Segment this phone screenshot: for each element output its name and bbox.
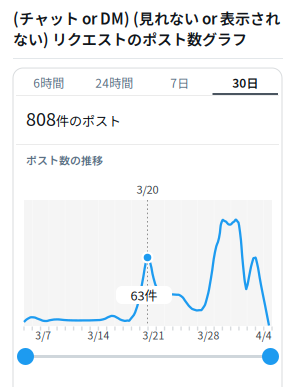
staticText: 6時間 — [33, 74, 64, 91]
staticText: 4/4 — [256, 327, 272, 343]
staticText: 3/21 — [142, 327, 164, 343]
button[interactable]: Range end — [262, 348, 279, 365]
staticText: 63件 — [130, 286, 157, 304]
staticText: 3/7 — [35, 327, 51, 343]
staticText: (チャット or DM) (見れない or 表示され — [13, 7, 280, 29]
staticText: ない) リクエストのポスト数グラフ — [13, 28, 247, 50]
button[interactable]: 24時間 — [81, 71, 147, 94]
button[interactable]: Range start — [17, 348, 34, 365]
staticText: 件のポスト — [56, 111, 121, 130]
staticText: 30日 — [232, 74, 258, 91]
staticText: 808 — [26, 105, 56, 131]
staticText: 3/20 — [136, 181, 158, 197]
staticText: 24時間 — [95, 74, 133, 91]
staticText: 3/28 — [198, 327, 220, 343]
button[interactable]: 7日 — [147, 71, 212, 94]
staticText: 7日 — [170, 74, 189, 91]
staticText: ポスト数の推移 — [26, 152, 103, 168]
button[interactable]: 6時間 — [16, 71, 81, 94]
button[interactable]: 30日 — [212, 71, 278, 94]
staticText: 3/14 — [87, 327, 109, 343]
